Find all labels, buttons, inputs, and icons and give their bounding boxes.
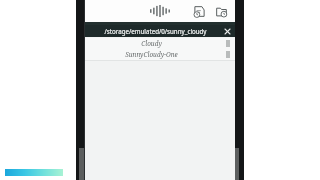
button[interactable]: Recent files (191, 3, 207, 19)
button[interactable]: Cloudy (85, 38, 235, 49)
button[interactable]: SunnyCloudy-One (85, 49, 235, 60)
staticText: Cloudy (141, 39, 162, 48)
button[interactable]: Open folder (213, 3, 229, 19)
staticText: /storage/emulated/0/sunny_cloudy (104, 27, 207, 35)
staticText: SunnyCloudy-One (125, 50, 178, 59)
button[interactable]: Close (222, 26, 233, 37)
button[interactable]: Audio waveform (149, 3, 171, 19)
